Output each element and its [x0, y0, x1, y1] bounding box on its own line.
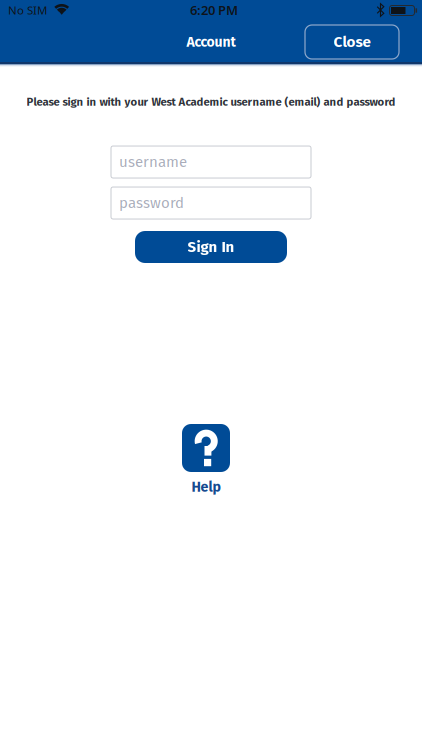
button[interactable]: Sign In — [135, 231, 287, 263]
staticText: Account — [186, 34, 235, 50]
staticText: Please sign in with your West Academic u… — [26, 95, 395, 109]
staticText: Sign In — [187, 238, 234, 256]
staticText: Help — [191, 478, 220, 495]
staticText: password — [119, 194, 184, 212]
button[interactable]: Help — [182, 424, 230, 496]
staticText: No SIM — [8, 2, 47, 18]
staticText: Close — [333, 33, 370, 51]
button[interactable]: Close — [305, 25, 399, 59]
staticText: 6:20 PM — [190, 1, 238, 19]
staticText: username — [119, 153, 187, 171]
button[interactable]: password — [111, 187, 311, 219]
button[interactable]: username — [111, 146, 311, 178]
